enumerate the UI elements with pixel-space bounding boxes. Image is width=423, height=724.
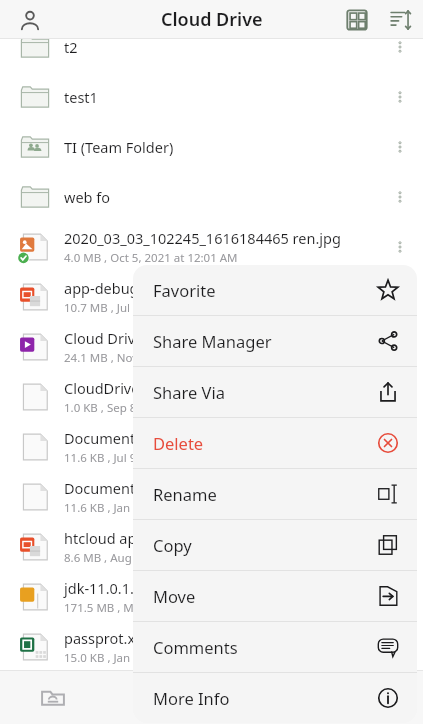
- button[interactable]: Move: [133, 571, 417, 621]
- button[interactable]: Document2.docx: [0, 472, 423, 522]
- button[interactable]: More options: [383, 622, 417, 672]
- staticText: web fo: [64, 187, 111, 207]
- button[interactable]: More options: [383, 422, 417, 472]
- staticText: 15.0 KB , Jan 6, 2021: [64, 650, 173, 666]
- staticText: passprot.xlsx: [64, 628, 154, 648]
- button[interactable]: More options: [383, 372, 417, 422]
- staticText: app-debug.apk: [64, 278, 168, 298]
- staticText: test1: [64, 87, 98, 107]
- button[interactable]: Favorite: [133, 265, 417, 315]
- staticText: jdk-11.0.1.zip: [64, 578, 154, 598]
- button[interactable]: Delete: [133, 418, 417, 468]
- button[interactable]: More options: [383, 322, 417, 372]
- button[interactable]: More options: [383, 72, 417, 122]
- staticText: 11.6 KB , Jan 4, 2021: [64, 500, 173, 516]
- button[interactable]: More options: [383, 522, 417, 572]
- staticText: Move: [153, 585, 377, 607]
- button[interactable]: More Info: [133, 673, 417, 723]
- button[interactable]: TI (Team Folder): [0, 122, 423, 172]
- button[interactable]: Account: [8, 0, 52, 39]
- staticText: 8.6 MB , Aug 3, 2021: [64, 550, 174, 566]
- staticText: Rename: [153, 483, 377, 505]
- button[interactable]: Share Manager: [133, 316, 417, 366]
- button[interactable]: More options: [383, 22, 417, 72]
- button[interactable]: Sort: [379, 0, 423, 39]
- button[interactable]: Cloud Drive video.mp4: [0, 322, 423, 372]
- staticText: 171.5 MB , Mar 2, 2021: [64, 600, 187, 616]
- button[interactable]: More options: [383, 222, 417, 272]
- button[interactable]: Favorites: [106, 670, 212, 724]
- staticText: Copy: [153, 534, 377, 556]
- button[interactable]: Comments: [133, 622, 417, 672]
- button[interactable]: app-debug.apk: [0, 272, 423, 322]
- staticText: More Info: [153, 687, 377, 709]
- staticText: Document1.docx: [64, 428, 180, 448]
- button[interactable]: More options: [383, 122, 417, 172]
- staticText: Favorite: [153, 279, 377, 301]
- button[interactable]: Grid view: [335, 0, 379, 39]
- staticText: Document2.docx: [64, 478, 180, 498]
- staticText: htcloud app.apk: [64, 528, 174, 548]
- button[interactable]: web fo: [0, 172, 423, 222]
- button[interactable]: htcloud app.apk: [0, 522, 423, 572]
- button[interactable]: More options: [383, 572, 417, 622]
- staticText: 11.6 KB , Jul 9, 2021: [64, 450, 169, 466]
- staticText: Share Via: [153, 381, 377, 403]
- staticText: t2: [64, 37, 78, 57]
- button[interactable]: More options: [383, 172, 417, 222]
- staticText: 10.7 MB , Jul 21, 2021: [64, 300, 179, 316]
- button[interactable]: Document1.docx: [0, 422, 423, 472]
- button[interactable]: More options: [383, 472, 417, 522]
- staticText: Cloud Drive: [161, 7, 263, 32]
- button[interactable]: passprot.xlsx: [0, 622, 423, 672]
- button[interactable]: Copy: [133, 520, 417, 570]
- button[interactable]: 2020_03_03_102245_1616184465 ren.jpg: [0, 222, 423, 272]
- staticText: Cloud Drive video.mp4: [64, 328, 219, 348]
- staticText: CloudDrive.txt: [64, 378, 162, 398]
- staticText: Comments: [153, 636, 377, 658]
- staticText: Share Manager: [153, 330, 377, 352]
- staticText: 4.0 MB , Oct 5, 2021 at 12:01 AM: [64, 250, 238, 266]
- button[interactable]: Rename: [133, 469, 417, 519]
- button[interactable]: More options: [383, 272, 417, 322]
- staticText: 1.0 KB , Sep 8, 2021: [64, 400, 169, 416]
- staticText: Delete: [153, 432, 377, 454]
- button[interactable]: test1: [0, 72, 423, 122]
- button[interactable]: Share Via: [133, 367, 417, 417]
- button[interactable]: t2: [0, 22, 423, 72]
- staticText: 2020_03_03_102245_1616184465 ren.jpg: [64, 228, 341, 248]
- button[interactable]: Cloud Drive: [0, 670, 106, 724]
- button[interactable]: jdk-11.0.1.zip: [0, 572, 423, 622]
- staticText: TI (Team Folder): [64, 137, 174, 157]
- staticText: 24.1 MB , Nov 2, 2021: [64, 350, 181, 366]
- button[interactable]: CloudDrive.txt: [0, 372, 423, 422]
